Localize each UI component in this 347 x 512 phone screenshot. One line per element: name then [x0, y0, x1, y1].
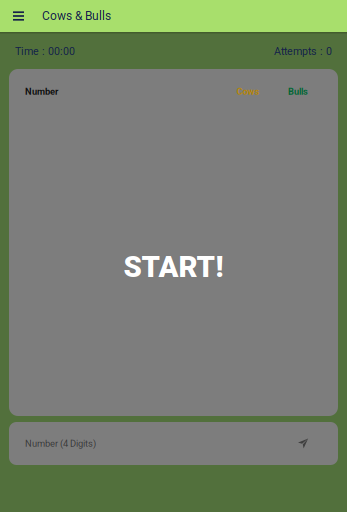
staticText: Number: [25, 86, 58, 97]
button[interactable]: Submit guess: [298, 422, 338, 465]
staticText: Time : 00:00: [15, 45, 75, 57]
staticText: START!: [123, 250, 223, 284]
button[interactable]: START!: [101, 242, 245, 292]
staticText: Cows & Bulls: [42, 9, 111, 23]
staticText: Cows: [236, 86, 259, 97]
staticText: Number (4 Digits): [25, 438, 96, 449]
staticText: Bulls: [288, 86, 308, 97]
button[interactable]: Open navigation menu: [0, 0, 37, 32]
button[interactable]: Number (4 Digits): [9, 422, 298, 465]
staticText: Attempts : 0: [274, 45, 332, 57]
